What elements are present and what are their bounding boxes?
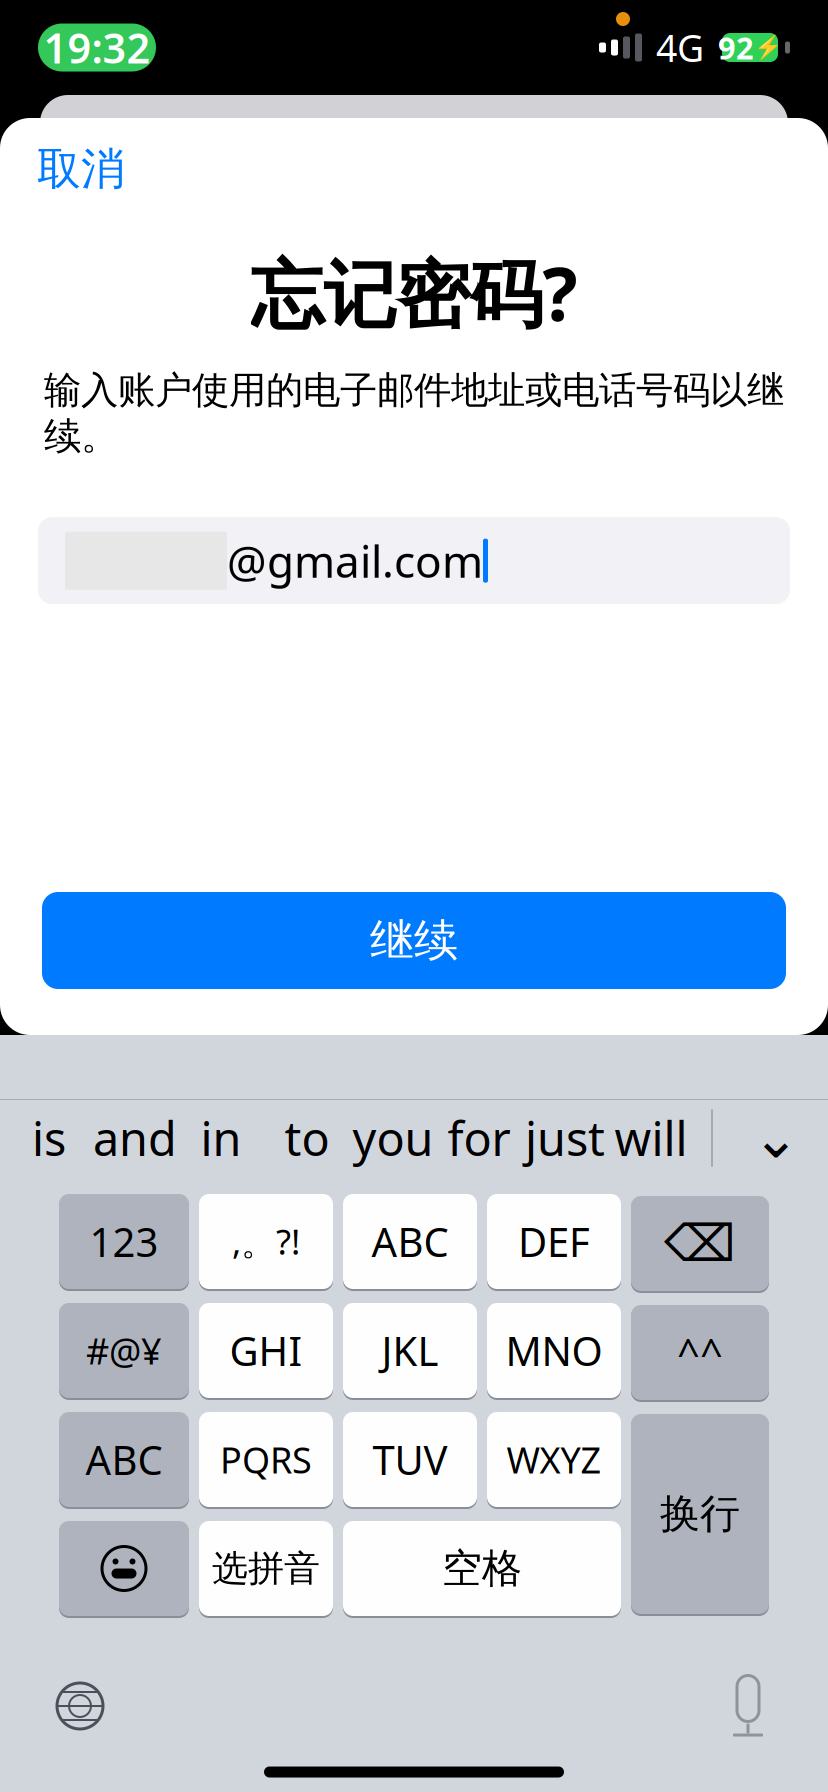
button[interactable]: ^^ bbox=[631, 1303, 769, 1402]
button[interactable]: Dictation bbox=[702, 1660, 794, 1752]
button[interactable]: just bbox=[522, 1100, 608, 1176]
button[interactable]: 选拼音 bbox=[199, 1519, 333, 1618]
staticText: ⌄ bbox=[752, 1106, 799, 1170]
staticText: 取消 bbox=[37, 142, 125, 196]
button[interactable]: ,。?! bbox=[199, 1192, 333, 1291]
button[interactable]: 123 bbox=[59, 1192, 189, 1291]
staticText: ABC bbox=[371, 1215, 448, 1268]
button[interactable]: ABC bbox=[343, 1192, 477, 1291]
button[interactable]: to bbox=[264, 1100, 350, 1176]
staticText: ABC bbox=[85, 1433, 162, 1486]
button[interactable]: 换行 bbox=[631, 1412, 769, 1616]
button[interactable]: 继续 bbox=[42, 892, 786, 989]
staticText: ⌫ bbox=[664, 1215, 736, 1272]
button[interactable]: and bbox=[92, 1100, 178, 1176]
button[interactable]: GHI bbox=[199, 1301, 333, 1400]
staticText: 92 bbox=[718, 27, 754, 68]
staticText: just bbox=[525, 1107, 605, 1169]
button[interactable]: Hide predictions bbox=[730, 1100, 822, 1176]
button[interactable]: you bbox=[350, 1100, 436, 1176]
staticText: 19:32 bbox=[43, 20, 150, 75]
staticText: 换行 bbox=[660, 1489, 740, 1538]
button[interactable]: #@¥ bbox=[59, 1301, 189, 1400]
button[interactable]: is bbox=[6, 1100, 92, 1176]
staticText: you bbox=[352, 1107, 433, 1169]
staticText: ⚡ bbox=[754, 35, 782, 60]
button[interactable]: Backspace bbox=[631, 1194, 769, 1293]
staticText: GHI bbox=[229, 1324, 302, 1377]
button[interactable]: 取消 bbox=[27, 134, 135, 204]
staticText: for bbox=[447, 1107, 510, 1169]
button[interactable]: WXYZ bbox=[487, 1410, 621, 1509]
staticText: to bbox=[284, 1107, 329, 1169]
button[interactable]: in bbox=[178, 1100, 264, 1176]
staticText: 输入账户使用的电子邮件地址或电话号码以继续。 bbox=[44, 367, 784, 459]
staticText: MNO bbox=[505, 1324, 602, 1377]
staticText: JKL bbox=[381, 1324, 438, 1377]
staticText: WXYZ bbox=[506, 1436, 601, 1483]
button[interactable]: TUV bbox=[343, 1410, 477, 1509]
staticText: 忘记密码? bbox=[250, 244, 577, 341]
button[interactable]: MNO bbox=[487, 1301, 621, 1400]
button[interactable]: Emoji bbox=[59, 1519, 189, 1618]
staticText: 空格 bbox=[442, 1544, 522, 1593]
staticText: and bbox=[93, 1107, 177, 1169]
button[interactable]: DEF bbox=[487, 1192, 621, 1291]
staticText: in bbox=[200, 1107, 241, 1169]
staticText: will bbox=[614, 1107, 687, 1169]
staticText: PQRS bbox=[220, 1436, 312, 1483]
button[interactable]: @gmail.com bbox=[38, 517, 790, 604]
staticText: @gmail.com bbox=[227, 531, 483, 590]
staticText: DEF bbox=[518, 1215, 590, 1268]
button[interactable]: Switch keyboard bbox=[34, 1660, 126, 1752]
button[interactable]: JKL bbox=[343, 1301, 477, 1400]
button[interactable]: PQRS bbox=[199, 1410, 333, 1509]
staticText: 4G bbox=[656, 23, 704, 72]
staticText: ^^ bbox=[677, 1326, 723, 1379]
staticText: 继续 bbox=[370, 913, 458, 967]
button[interactable]: 空格 bbox=[343, 1519, 621, 1618]
staticText: 选拼音 bbox=[212, 1546, 320, 1591]
staticText: ,。?! bbox=[232, 1218, 300, 1265]
button[interactable]: for bbox=[436, 1100, 522, 1176]
staticText: TUV bbox=[372, 1433, 447, 1486]
staticText: is bbox=[32, 1107, 66, 1169]
button[interactable]: will bbox=[608, 1100, 694, 1176]
button[interactable]: ABC bbox=[59, 1410, 189, 1509]
staticText: 123 bbox=[89, 1215, 158, 1268]
staticText: #@¥ bbox=[86, 1327, 162, 1374]
